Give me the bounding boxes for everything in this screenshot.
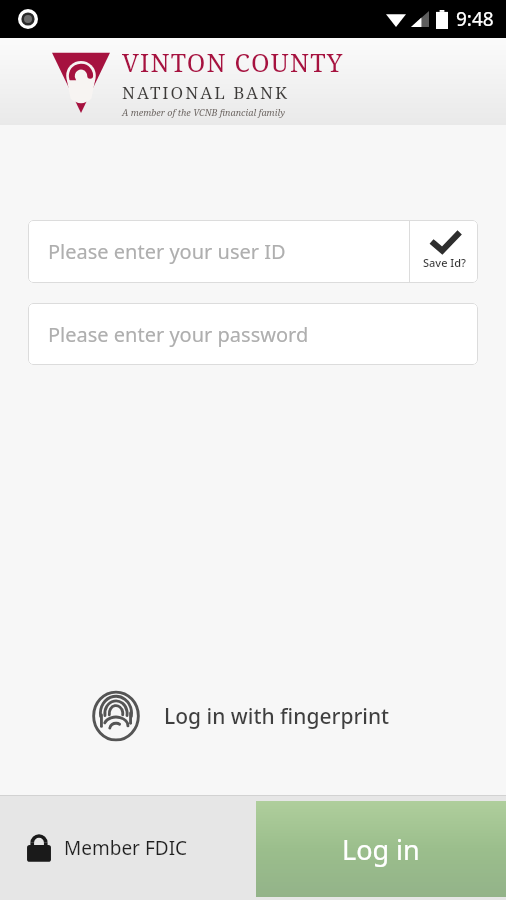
button[interactable]: Log in with fingerprint	[0, 682, 506, 750]
button[interactable]: Please enter your password	[28, 303, 478, 365]
staticText: 9:48	[456, 6, 494, 32]
staticText: A member of the VCNB financial family	[122, 106, 285, 118]
staticText: Log in	[342, 831, 420, 868]
staticText: Log in with fingerprint	[164, 702, 390, 731]
staticText: Member FDIC	[64, 835, 188, 861]
button[interactable]: Member FDIC	[0, 823, 200, 873]
button[interactable]: Please enter your user ID	[28, 220, 409, 283]
button[interactable]: Log in	[256, 801, 506, 897]
staticText: NATIONAL BANK	[122, 81, 289, 104]
staticText: Please enter your user ID	[48, 238, 286, 265]
button[interactable]: Save Id	[410, 220, 478, 283]
staticText: Save Id?	[423, 255, 466, 270]
staticText: Please enter your password	[48, 321, 309, 348]
staticText: VINTON COUNTY	[122, 45, 344, 79]
